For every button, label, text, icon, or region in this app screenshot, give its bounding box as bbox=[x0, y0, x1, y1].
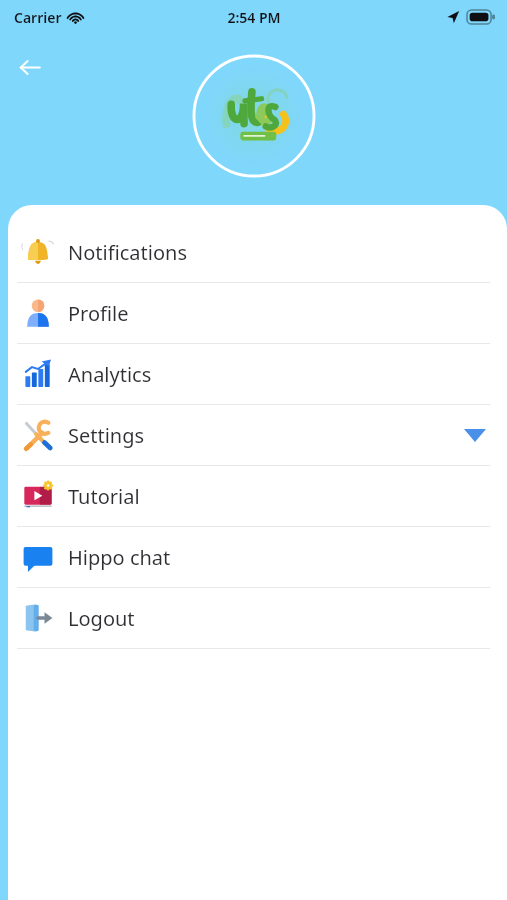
button[interactable]: Expand Settings bbox=[460, 420, 490, 450]
button[interactable]: Back bbox=[10, 48, 48, 86]
staticText: Profile bbox=[68, 300, 129, 327]
button[interactable]: Settings bbox=[8, 405, 507, 465]
button[interactable]: Analytics bbox=[8, 344, 507, 404]
button[interactable] bbox=[185, 47, 323, 185]
staticText: Carrier bbox=[14, 8, 62, 27]
staticText: 2:54 PM bbox=[227, 8, 281, 27]
staticText: Notifications bbox=[68, 239, 187, 266]
button[interactable]: Profile bbox=[8, 283, 507, 343]
staticText: Tutorial bbox=[68, 483, 140, 510]
staticText: Logout bbox=[68, 605, 135, 632]
staticText: Settings bbox=[68, 422, 145, 449]
staticText: Hippo chat bbox=[68, 544, 171, 571]
button[interactable]: Logout bbox=[8, 588, 507, 648]
button[interactable]: Hippo chat bbox=[8, 527, 507, 587]
button[interactable]: Tutorial bbox=[8, 466, 507, 526]
staticText: Analytics bbox=[68, 361, 152, 388]
button[interactable]: Notifications bbox=[8, 222, 507, 282]
